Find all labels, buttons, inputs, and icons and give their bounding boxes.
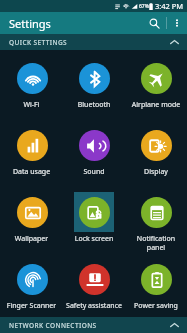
button[interactable]: Lock screen (63, 187, 125, 254)
staticText: Data usage (2, 167, 61, 177)
button[interactable]: NETWORK CONNECTIONS (0, 317, 187, 333)
staticText: Wi-Fi (2, 100, 61, 110)
button[interactable]: Finger Scanner (0, 254, 63, 317)
button[interactable]: Display (125, 120, 187, 187)
button[interactable]: Safety assistance (63, 254, 125, 317)
staticText: Wallpaper (2, 234, 61, 244)
staticText: 67% (139, 3, 149, 10)
button[interactable]: Wallpaper (0, 187, 63, 254)
button[interactable]: Notification panel (125, 187, 187, 254)
staticText: QUICK SETTINGS (9, 38, 67, 47)
staticText: Bluetooth (65, 100, 123, 110)
button[interactable]: Data usage (0, 120, 63, 187)
staticText: Display (127, 167, 185, 177)
staticText: 3:42 PM (155, 1, 184, 11)
staticText: NETWORK CONNECTIONS (9, 321, 97, 330)
button[interactable]: Bluetooth (63, 53, 125, 120)
button[interactable]: Search (142, 12, 166, 34)
staticText: Airplane mode (127, 100, 185, 110)
staticText: Notification panel (127, 234, 185, 252)
staticText: Safety assistance (65, 301, 123, 311)
staticText: Sound (65, 167, 123, 177)
button[interactable]: Sound (63, 120, 125, 187)
staticText: Settings (9, 16, 51, 31)
button[interactable]: Wi-Fi (0, 53, 63, 120)
button[interactable]: More options (167, 12, 187, 34)
button[interactable]: Airplane mode (125, 53, 187, 120)
staticText: Lock screen (65, 234, 123, 244)
button[interactable]: QUICK SETTINGS (0, 34, 187, 50)
staticText: Finger Scanner (2, 301, 61, 311)
staticText: Power saving (127, 301, 185, 311)
button[interactable]: Power saving (125, 254, 187, 317)
